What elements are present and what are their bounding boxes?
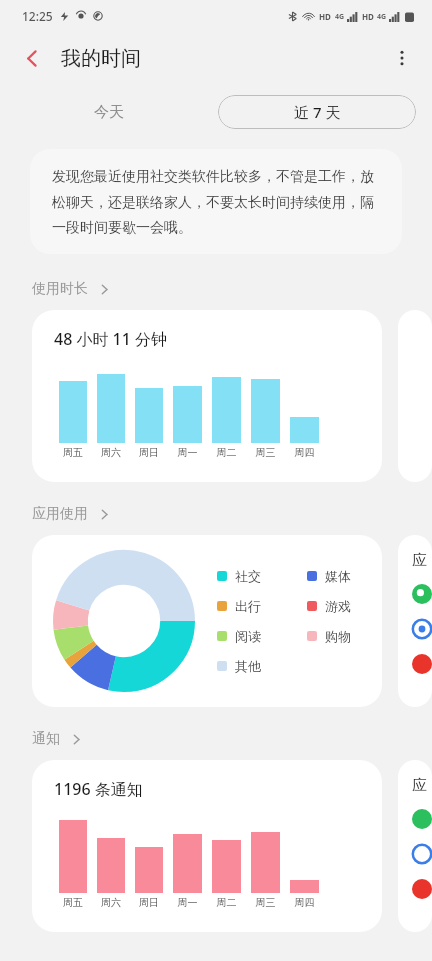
button[interactable]: 近 7 天 — [218, 95, 416, 129]
button[interactable]: 发现您最近使用社交类软件比较多，不管是工作，放松聊天，还是联络家人，不要太长时间… — [30, 149, 402, 254]
staticText: 应用使用 — [32, 505, 88, 523]
staticText: 12:25 — [22, 8, 53, 24]
staticText: 购物 — [325, 628, 351, 644]
staticText: HD — [319, 11, 331, 22]
button[interactable]: 今天 — [78, 96, 140, 129]
button[interactable]: More options — [382, 38, 422, 78]
staticText: 其他 — [235, 658, 261, 674]
button[interactable]: 通知 — [28, 727, 86, 751]
staticText: 出行 — [235, 598, 261, 614]
button[interactable]: 应用使用 — [28, 502, 114, 526]
button[interactable]: 应 — [398, 535, 432, 707]
staticText: 1196 条通知 — [54, 778, 143, 800]
staticText: 应 — [412, 776, 427, 795]
staticText: 周四 — [285, 446, 324, 459]
staticText: 周日 — [130, 896, 168, 909]
staticText: 周二 — [207, 896, 246, 909]
staticText: 周一 — [168, 446, 207, 459]
staticText: 社交 — [235, 568, 261, 584]
staticText: 媒体 — [325, 568, 351, 584]
staticText: 阅读 — [235, 628, 261, 644]
staticText: 发现您最近使用社交类软件比较多，不管是工作，放松聊天，还是联络家人，不要太长时间… — [52, 168, 380, 236]
button[interactable]: 1196 条通知 — [32, 760, 382, 932]
staticText: 周一 — [168, 896, 207, 909]
staticText: 周四 — [285, 896, 324, 909]
staticText: 周五 — [54, 896, 92, 909]
staticText: 4G — [335, 12, 345, 22]
staticText: 4G — [377, 12, 387, 22]
button[interactable]: 48 小时 11 分钟 — [32, 310, 382, 482]
staticText: 应 — [412, 551, 427, 570]
staticText: 周六 — [92, 446, 130, 459]
staticText: 周日 — [130, 446, 168, 459]
staticText: 近 7 天 — [294, 102, 341, 122]
staticText: 通知 — [32, 730, 60, 748]
button[interactable]: 使用时长 — [28, 277, 114, 301]
button[interactable]: 社交 — [32, 535, 382, 707]
staticText: 周三 — [246, 896, 285, 909]
button[interactable]: Back — [12, 38, 52, 78]
staticText: HD — [362, 11, 374, 22]
staticText: 周二 — [207, 446, 246, 459]
staticText: 周六 — [92, 896, 130, 909]
staticText: 使用时长 — [32, 280, 88, 298]
staticText: 我的时间 — [61, 46, 141, 71]
staticText: 周三 — [246, 446, 285, 459]
button[interactable]: 应 — [398, 760, 432, 932]
staticText: 游戏 — [325, 598, 351, 614]
staticText: 48 小时 11 分钟 — [54, 328, 168, 350]
staticText: 今天 — [94, 103, 124, 122]
staticText: 周五 — [54, 446, 92, 459]
